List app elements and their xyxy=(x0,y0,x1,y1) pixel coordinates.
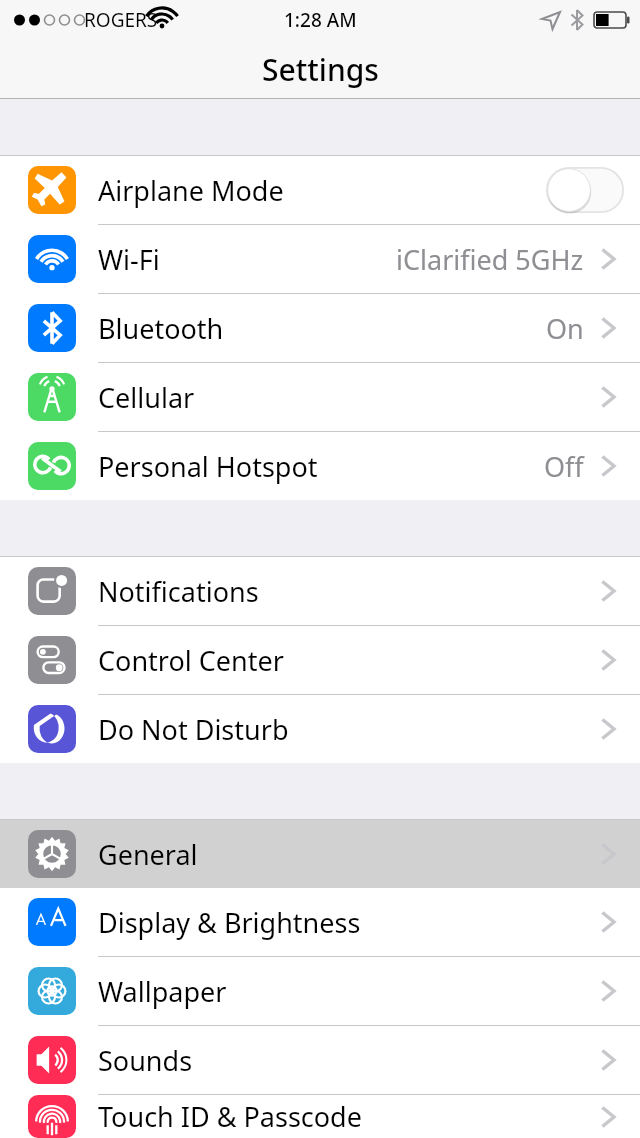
staticText: Bluetooth xyxy=(98,310,224,347)
button[interactable]: Cellular xyxy=(0,363,640,431)
staticText: Settings xyxy=(262,49,379,90)
staticText: ROGERS xyxy=(84,7,158,33)
staticText: Display & Brightness xyxy=(98,904,361,941)
staticText: Airplane Mode xyxy=(98,172,284,209)
staticText: iClarified 5GHz xyxy=(396,241,584,278)
button[interactable]: Bluetooth xyxy=(0,294,640,362)
staticText: Sounds xyxy=(98,1042,193,1079)
staticText: On xyxy=(546,310,584,347)
staticText: Off xyxy=(544,448,584,485)
button[interactable]: Sounds xyxy=(0,1026,640,1094)
staticText: Wi-Fi xyxy=(98,241,160,278)
staticText: Wallpaper xyxy=(98,973,227,1010)
button[interactable]: Notifications xyxy=(0,557,640,625)
staticText: Touch ID & Passcode xyxy=(98,1098,362,1135)
staticText: Personal Hotspot xyxy=(98,448,318,485)
button[interactable]: Personal Hotspot xyxy=(0,432,640,500)
button[interactable]: Do Not Disturb xyxy=(0,695,640,763)
button[interactable]: Touch ID & Passcode xyxy=(0,1095,640,1138)
button[interactable]: Wallpaper xyxy=(0,957,640,1025)
staticText: Control Center xyxy=(98,642,284,679)
staticText: Notifications xyxy=(98,573,259,610)
staticText: Do Not Disturb xyxy=(98,711,289,748)
button[interactable]: Airplane Mode xyxy=(0,156,640,224)
staticText: Cellular xyxy=(98,379,195,416)
staticText: General xyxy=(98,836,198,873)
button[interactable]: Control Center xyxy=(0,626,640,694)
button[interactable]: Display & Brightness xyxy=(0,888,640,956)
button[interactable]: Wi-Fi xyxy=(0,225,640,293)
staticText: 1:28 AM xyxy=(284,7,357,33)
button[interactable]: General xyxy=(0,820,640,888)
